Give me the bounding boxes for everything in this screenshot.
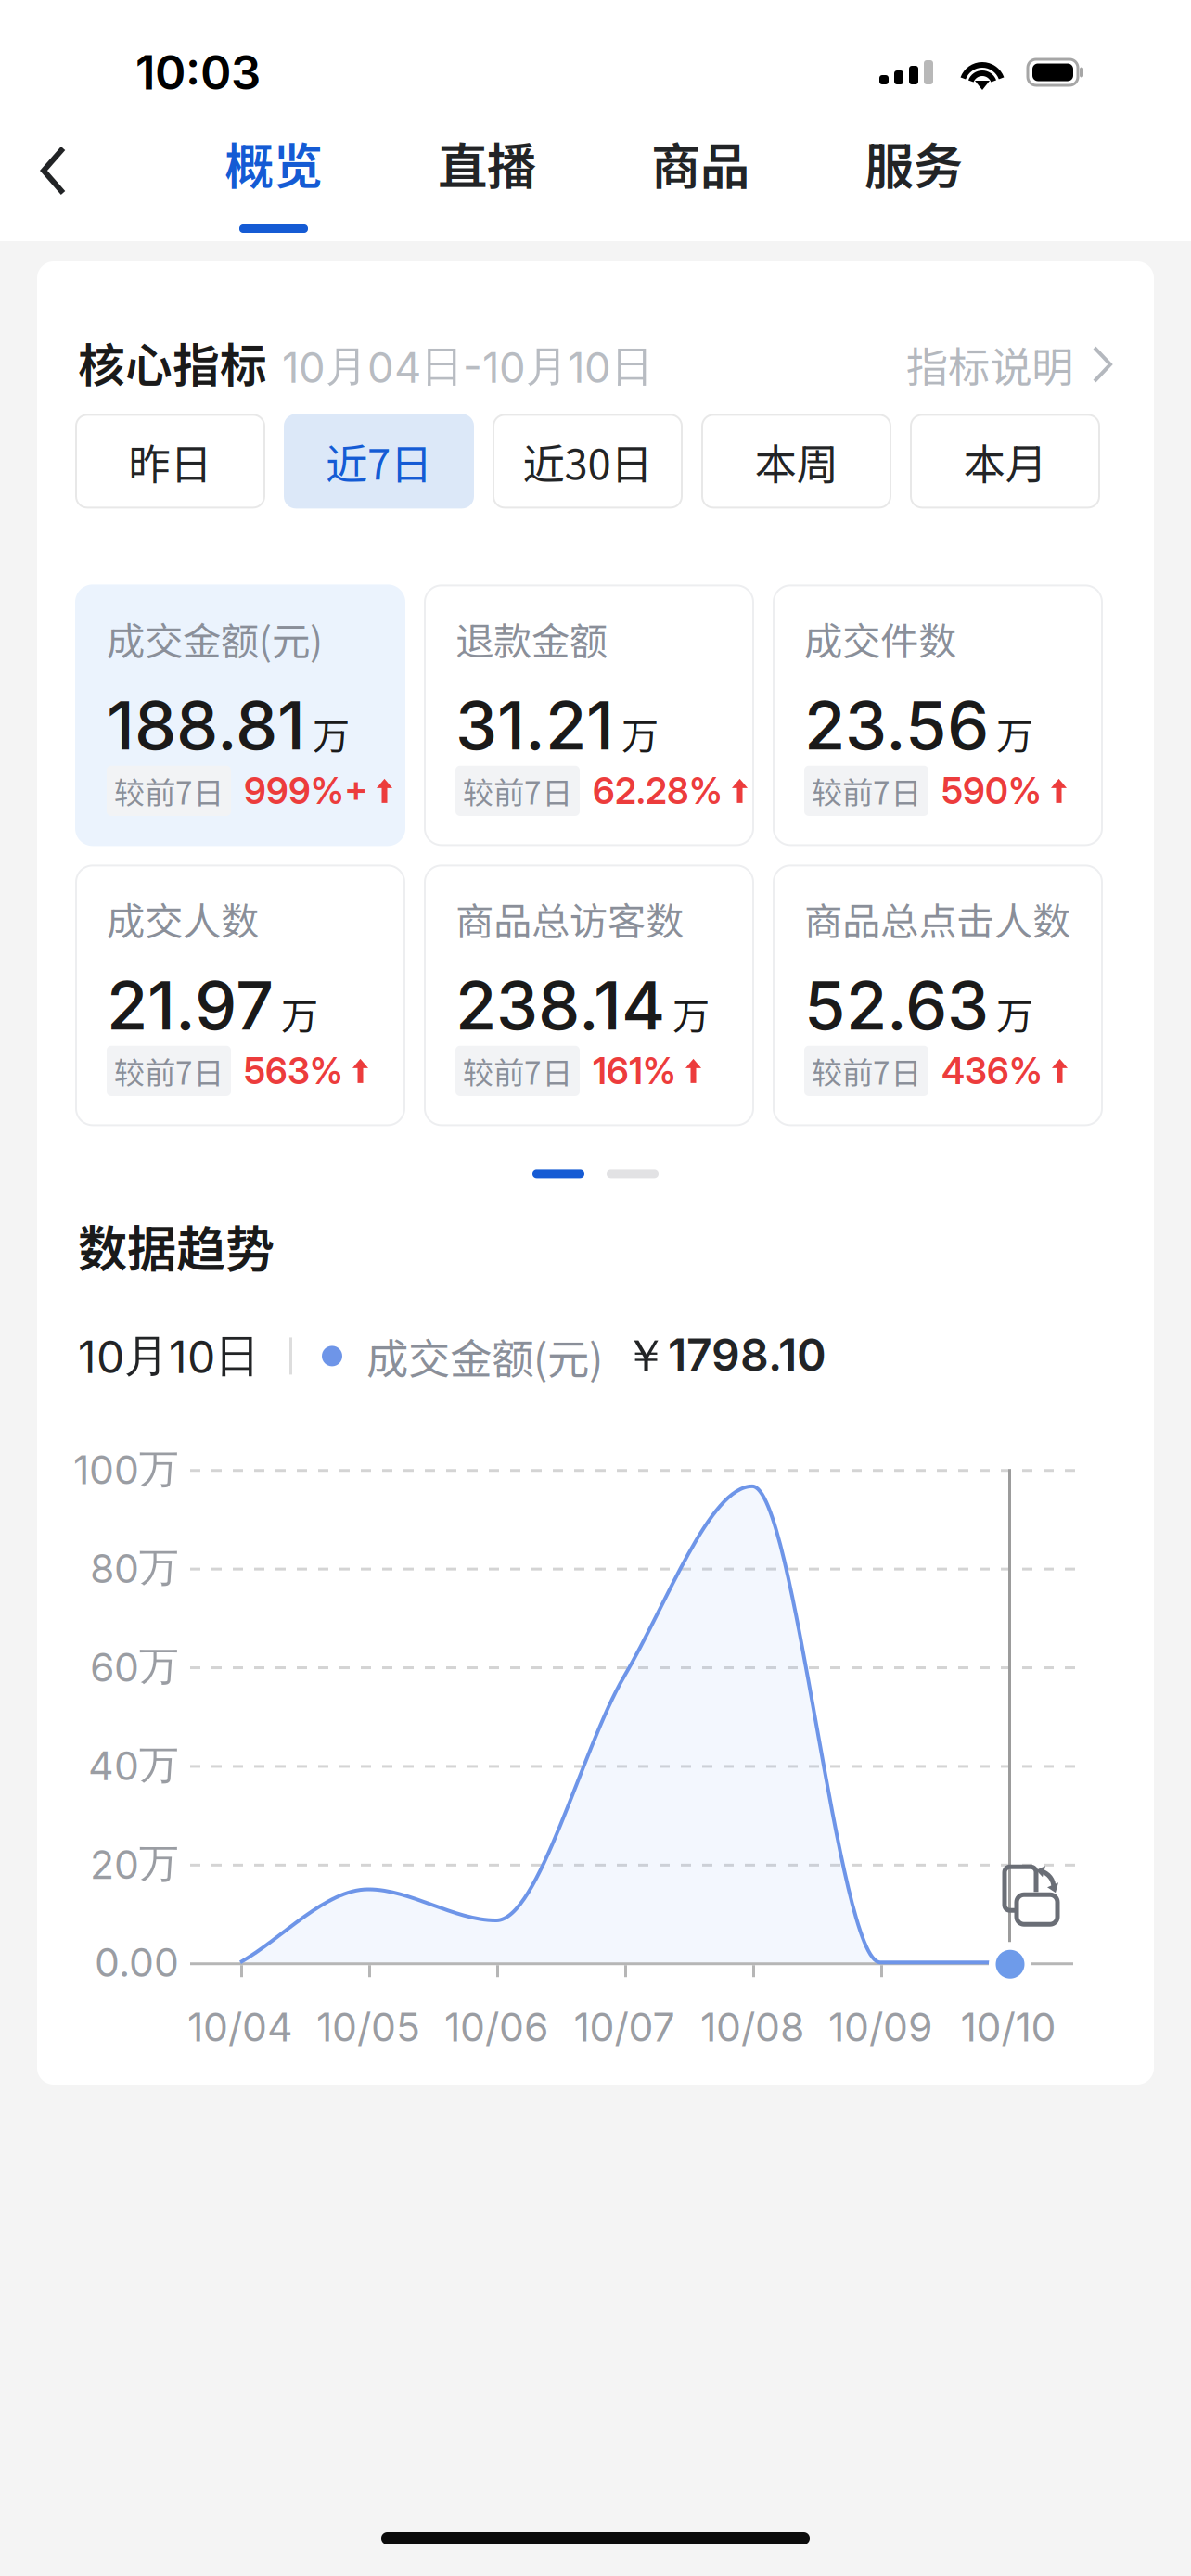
button[interactable]: 成交人数 xyxy=(76,866,404,1125)
staticText: 商品总访客数 xyxy=(455,891,684,946)
button[interactable]: 退款金额 xyxy=(425,585,753,845)
staticText: 10/08 xyxy=(700,2003,804,2051)
staticText: ￥1798.10 xyxy=(623,1328,826,1384)
button[interactable]: 近7日 xyxy=(285,415,473,508)
staticText: 成交人数 xyxy=(107,891,259,946)
button[interactable]: 商品 xyxy=(594,101,807,240)
staticText: 10月10日 xyxy=(78,1328,260,1384)
staticText: 较前7日 xyxy=(463,1048,572,1093)
staticText: 10月04日-10月10日 xyxy=(282,340,653,393)
staticText: 近30日 xyxy=(523,431,653,492)
staticText: 999%+ xyxy=(244,769,367,813)
staticText: 近7日 xyxy=(326,431,432,492)
staticText: 100万 xyxy=(73,1444,179,1494)
staticText: 万 xyxy=(672,987,710,1040)
staticText: 23.56 xyxy=(804,685,989,766)
staticText: 万 xyxy=(996,987,1033,1040)
button[interactable]: 成交件数 xyxy=(774,585,1102,845)
staticText: 62.28% xyxy=(593,769,723,813)
staticText: 590% xyxy=(941,769,1042,813)
button[interactable]: 概览 xyxy=(167,101,380,240)
staticText: 188.81 xyxy=(107,685,305,766)
button[interactable]: 近30日 xyxy=(493,415,682,508)
staticText: 成交金额(元) xyxy=(107,611,323,666)
staticText: 436% xyxy=(941,1049,1043,1093)
button[interactable]: 成交金额(元) xyxy=(76,585,404,845)
staticText: 10/04 xyxy=(187,2003,293,2051)
staticText: 成交金额(元) xyxy=(366,1326,603,1386)
staticText: 较前7日 xyxy=(812,1048,921,1093)
staticText: 31.21 xyxy=(455,685,614,766)
staticText: 退款金额 xyxy=(455,611,608,666)
staticText: 52.63 xyxy=(804,965,989,1046)
staticText: 238.14 xyxy=(455,965,665,1046)
button[interactable]: 商品总访客数 xyxy=(425,866,753,1125)
staticText: 20万 xyxy=(90,1839,179,1889)
staticText: 10/09 xyxy=(828,2003,932,2051)
staticText: 商品总点击人数 xyxy=(804,891,1070,946)
button[interactable]: 指标说明 xyxy=(906,334,1113,395)
staticText: 0.00 xyxy=(95,1938,179,1986)
staticText: 直播 xyxy=(438,127,536,199)
staticText: 服务 xyxy=(864,127,963,199)
staticText: 较前7日 xyxy=(114,768,224,813)
button[interactable]: 本月 xyxy=(911,415,1099,508)
staticText: 80万 xyxy=(90,1543,179,1593)
button[interactable]: 本周 xyxy=(702,415,890,508)
button[interactable]: 商品总点击人数 xyxy=(774,866,1102,1125)
staticText: 本周 xyxy=(755,431,838,492)
staticText: 40万 xyxy=(88,1740,179,1790)
staticText: 10/07 xyxy=(574,2003,675,2051)
staticText: 本月 xyxy=(963,431,1047,492)
staticText: 较前7日 xyxy=(812,768,921,813)
button[interactable]: Back xyxy=(0,101,167,240)
button[interactable]: 直播 xyxy=(380,101,594,240)
staticText: 10/06 xyxy=(444,2003,548,2051)
staticText: 21.97 xyxy=(107,965,274,1046)
staticText: 161% xyxy=(593,1049,676,1093)
staticText: 10:03 xyxy=(135,44,261,101)
staticText: 10/10 xyxy=(960,2003,1056,2051)
button[interactable]: 昨日 xyxy=(76,415,264,508)
staticText: 万 xyxy=(313,706,350,760)
staticText: 核心指标 xyxy=(78,328,267,396)
staticText: 数据趋势 xyxy=(78,1210,275,1281)
staticText: 万 xyxy=(281,987,318,1040)
staticText: 商品 xyxy=(651,127,749,199)
staticText: 昨日 xyxy=(128,431,212,492)
staticText: 指标说明 xyxy=(906,334,1073,395)
button[interactable]: 服务 xyxy=(807,101,1020,240)
staticText: 563% xyxy=(244,1049,343,1093)
staticText: 60万 xyxy=(90,1641,179,1691)
staticText: 10/05 xyxy=(316,2003,420,2051)
staticText: 概览 xyxy=(224,127,323,199)
staticText: 万 xyxy=(996,706,1033,760)
staticText: 较前7日 xyxy=(463,768,572,813)
staticText: 成交件数 xyxy=(804,611,956,666)
staticText: 万 xyxy=(621,706,659,760)
staticText: 较前7日 xyxy=(114,1048,224,1093)
